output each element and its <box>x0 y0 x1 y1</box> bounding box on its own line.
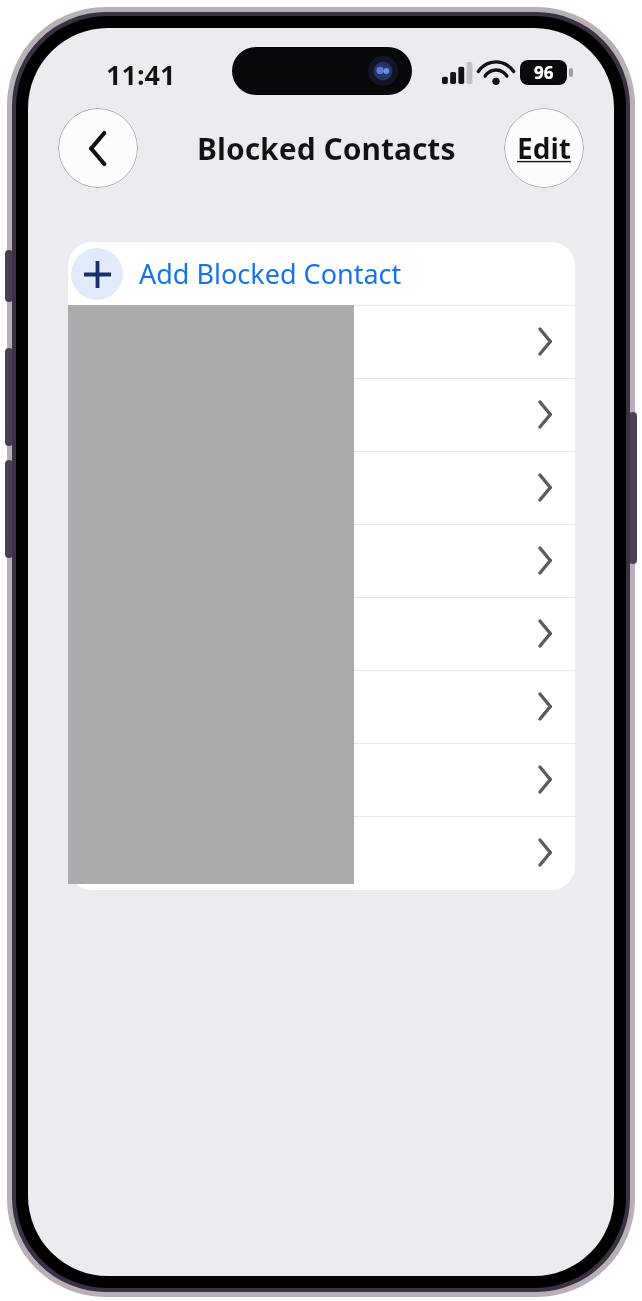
button[interactable]: Dan Way Phone <box>68 743 575 816</box>
button[interactable]: Robert Galon <box>68 524 575 597</box>
button[interactable]: Robocaller <box>68 670 575 743</box>
staticText: 96 <box>534 61 554 84</box>
button[interactable]: Aunt Tu Me <box>68 305 575 378</box>
staticText: Edit <box>517 129 571 167</box>
button[interactable]: 38 Unknown <box>68 816 575 889</box>
staticText: Blocked Contacts <box>197 128 456 169</box>
staticText: Add Blocked Contact <box>139 255 402 292</box>
button[interactable]: Edit <box>504 108 584 188</box>
button[interactable]: Jes Pepe <box>68 451 575 524</box>
button[interactable]: Back <box>58 108 138 188</box>
button[interactable]: Roy Carl Nelson <box>68 597 575 670</box>
staticText: 11:41 <box>106 56 176 93</box>
button[interactable]: Raymond <box>68 378 575 451</box>
button[interactable]: Add Blocked Contact <box>68 242 575 305</box>
